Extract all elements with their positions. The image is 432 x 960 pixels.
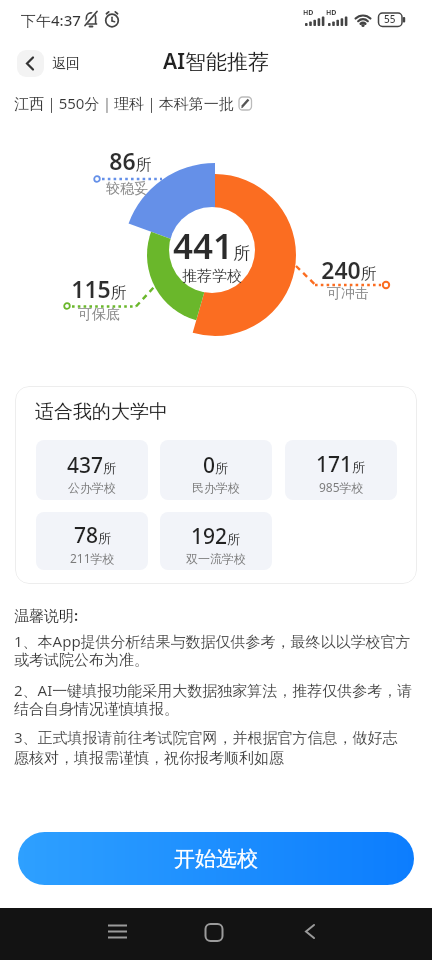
staticText: 可冲击 bbox=[327, 285, 369, 303]
button[interactable]: 437所 bbox=[36, 440, 148, 500]
staticText: HD bbox=[303, 8, 314, 18]
staticText: 192所 bbox=[191, 522, 241, 551]
button[interactable] bbox=[236, 94, 254, 112]
staticText: 江西｜550分｜理科｜本科第一批 bbox=[14, 93, 234, 113]
button[interactable]: 192所 bbox=[160, 512, 272, 570]
staticText: 结合自身情况谨慎填报。 bbox=[14, 700, 179, 719]
button[interactable] bbox=[198, 918, 230, 950]
button[interactable]: 0所 bbox=[160, 440, 272, 500]
staticText: 较稳妥 bbox=[106, 180, 148, 198]
staticText: 78所 bbox=[74, 521, 112, 550]
staticText: 民办学校 bbox=[192, 480, 240, 495]
button[interactable]: 78所 bbox=[36, 512, 148, 570]
staticText: 下午4:37 bbox=[21, 10, 81, 30]
staticText: 返回 bbox=[52, 55, 80, 73]
staticText: 开始选校 bbox=[174, 846, 258, 872]
staticText: 1、本App提供分析结果与数据仅供参考，最终以以学校官方 bbox=[14, 631, 411, 651]
staticText: 或考试院公布为准。 bbox=[14, 651, 149, 670]
staticText: 3、正式填报请前往考试院官网，并根据官方信息，做好志 bbox=[14, 727, 398, 747]
button[interactable] bbox=[295, 918, 327, 950]
staticText: 441所 bbox=[173, 222, 251, 270]
staticText: 推荐学校 bbox=[182, 267, 242, 286]
button[interactable] bbox=[102, 918, 134, 950]
staticText: AI智能推荐 bbox=[163, 47, 269, 76]
staticText: HD bbox=[326, 8, 337, 18]
staticText: 可保底 bbox=[78, 306, 120, 324]
staticText: 适合我的大学中 bbox=[35, 400, 168, 424]
button[interactable]: 返回 bbox=[17, 50, 80, 77]
staticText: 温馨说明: bbox=[14, 605, 79, 625]
staticText: 240所 bbox=[321, 254, 377, 285]
staticText: 86所 bbox=[109, 145, 152, 176]
staticText: 115所 bbox=[71, 273, 127, 304]
staticText: 211学校 bbox=[70, 550, 115, 566]
staticText: 171所 bbox=[316, 450, 366, 479]
staticText: 愿核对，填报需谨慎，祝你报考顺利如愿 bbox=[14, 749, 284, 768]
staticText: 437所 bbox=[67, 451, 117, 480]
staticText: 0所 bbox=[203, 451, 229, 480]
staticText: 双一流学校 bbox=[186, 551, 246, 566]
staticText: 55 bbox=[384, 12, 396, 26]
staticText: 公办学校 bbox=[68, 480, 116, 495]
staticText: 985学校 bbox=[319, 479, 364, 495]
button[interactable]: 171所 bbox=[285, 440, 397, 500]
button[interactable]: 开始选校 bbox=[18, 832, 414, 885]
staticText: 2、AI一键填报功能采用大数据独家算法，推荐仅供参考，请 bbox=[14, 680, 413, 700]
